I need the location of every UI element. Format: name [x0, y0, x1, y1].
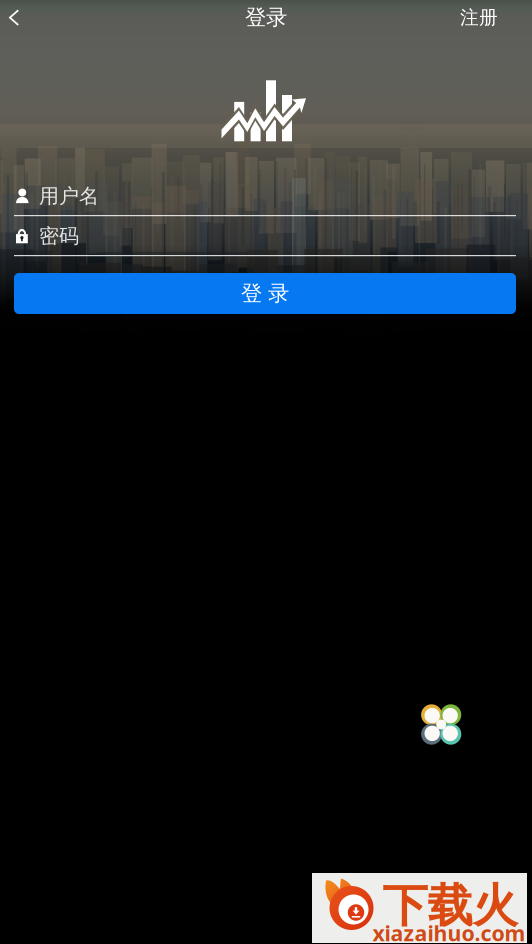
staticText: 注册	[460, 6, 498, 29]
staticText: xiazaihuo.com	[372, 919, 525, 944]
staticText: 登录	[245, 4, 287, 31]
button[interactable]: 返回	[0, 0, 44, 35]
staticText: 下载火	[382, 878, 517, 934]
button[interactable]: 用户名	[0, 181, 532, 211]
button[interactable]: 注册	[451, 0, 507, 35]
button[interactable]: 登 录	[14, 273, 516, 314]
staticText: 用户名	[39, 184, 99, 208]
staticText: 密码	[39, 224, 79, 248]
button[interactable]: 密码	[0, 221, 532, 251]
staticText: 登 录	[241, 280, 289, 307]
